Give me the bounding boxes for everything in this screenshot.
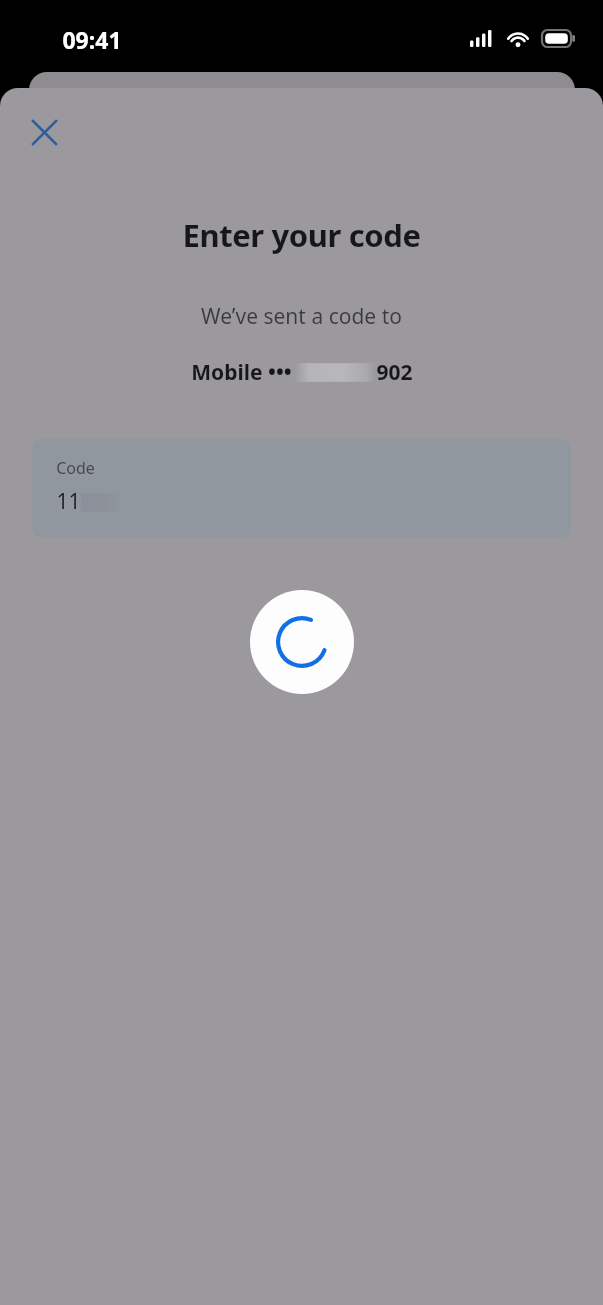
other: Loading: [250, 590, 354, 694]
button[interactable]: Close: [18, 106, 70, 158]
staticText: We’ve sent a code to: [201, 302, 402, 331]
staticText: 902: [376, 358, 413, 387]
button[interactable]: Code: [32, 439, 571, 538]
staticText: Code: [56, 457, 95, 479]
staticText: 09:41: [62, 24, 122, 55]
staticText: 11: [56, 487, 81, 516]
staticText: Enter your code: [182, 214, 421, 256]
staticText: Mobile •••: [191, 358, 292, 387]
